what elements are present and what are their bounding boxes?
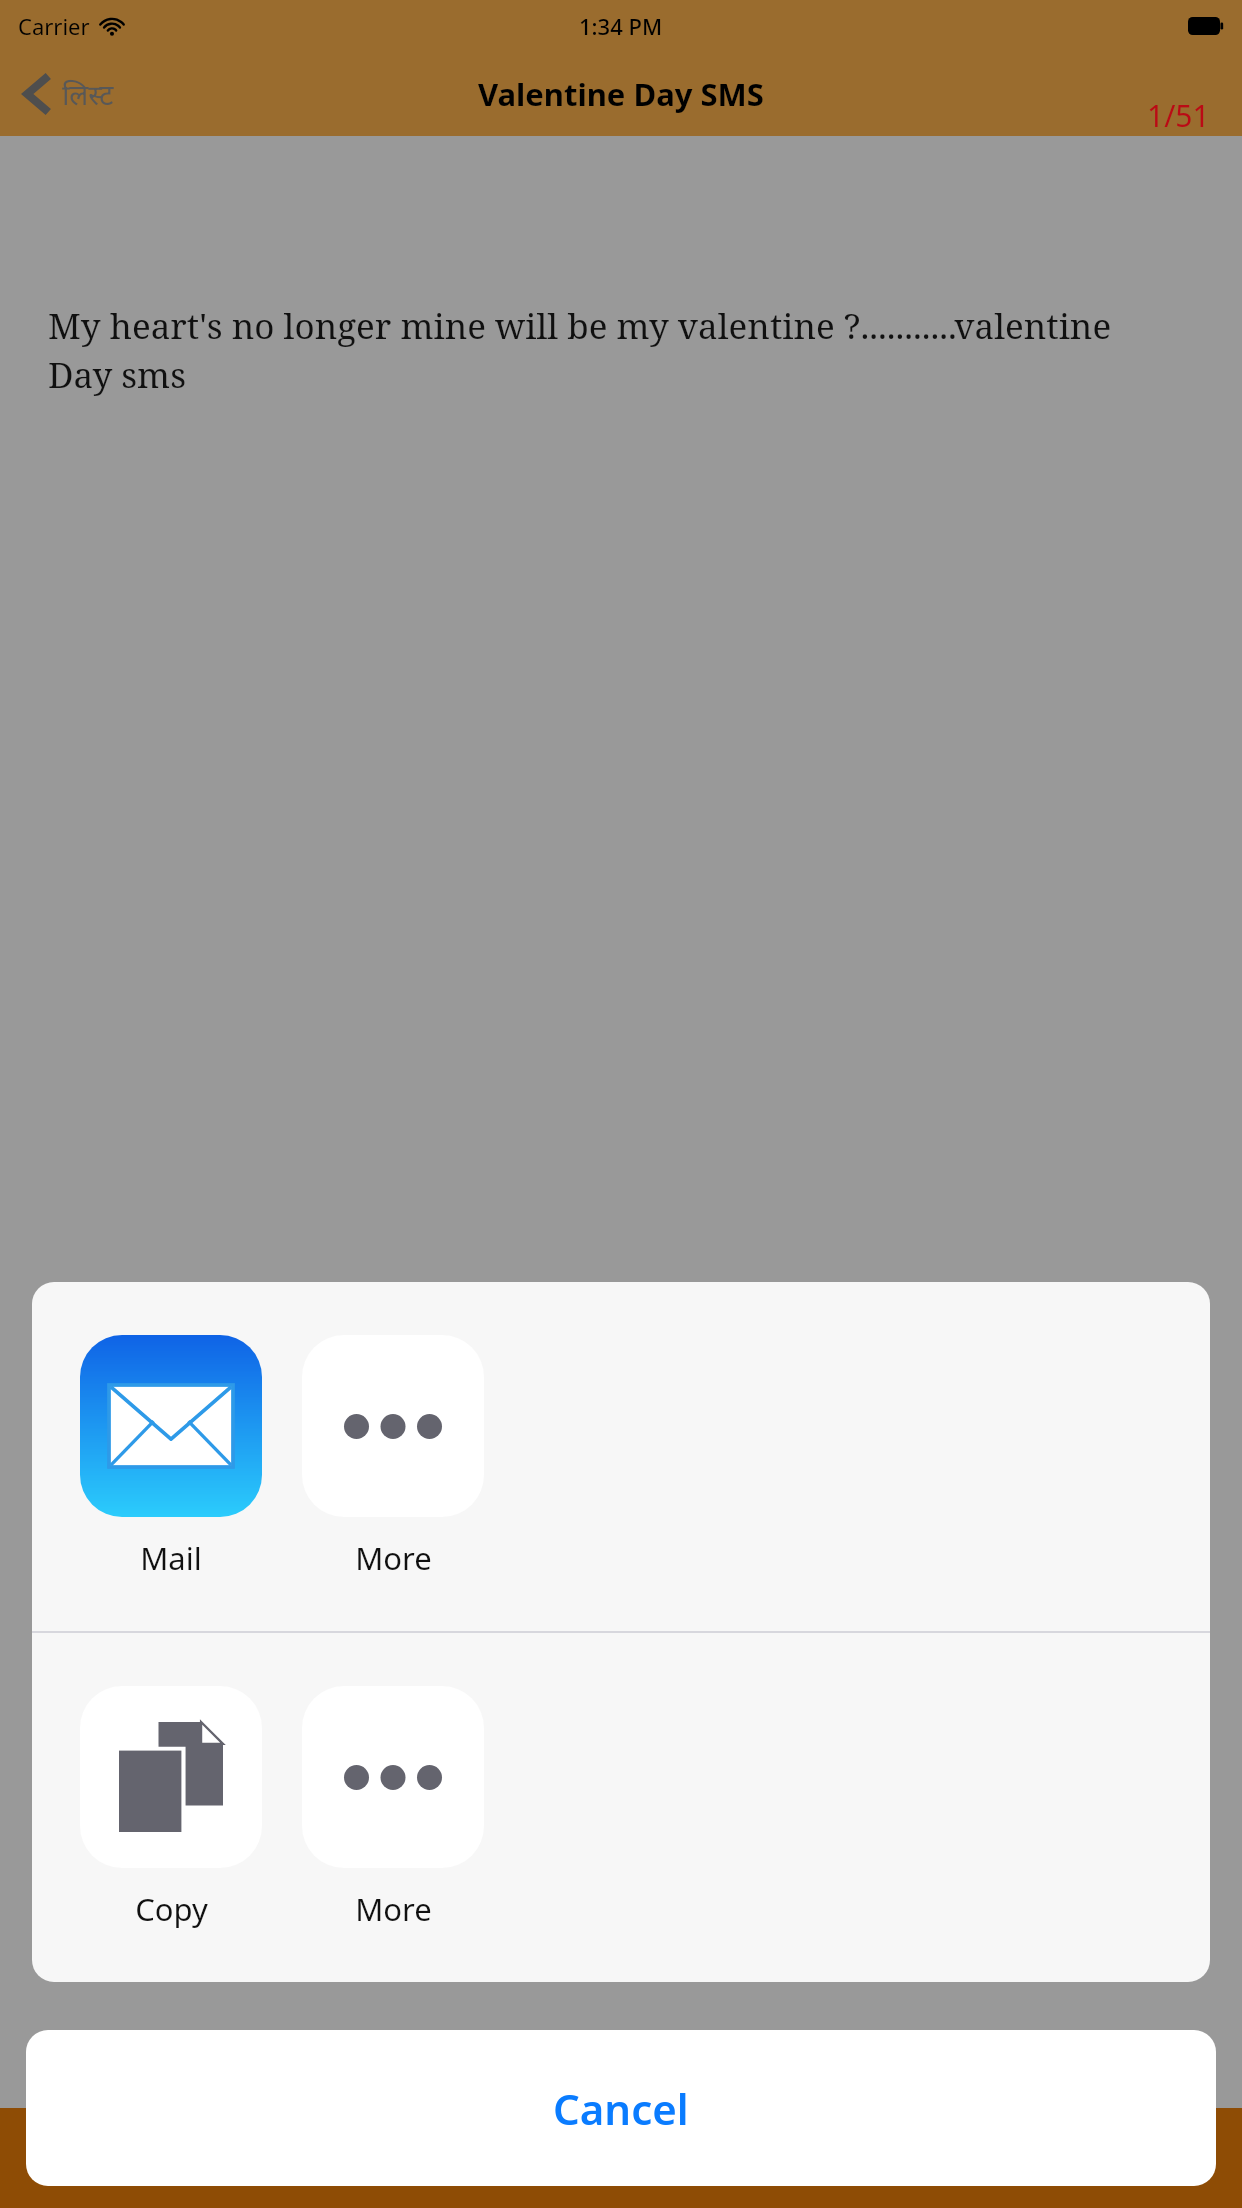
staticText: Mail [140,1537,202,1579]
button[interactable]: More [302,1331,484,1583]
button[interactable]: Share [566,2108,676,2208]
staticText: Valentine Day SMS [478,73,764,115]
staticText: Copy [135,1888,208,1930]
button[interactable]: More [302,1682,484,1934]
button[interactable]: Next [904,2108,1014,2208]
staticText: More [355,1537,432,1579]
staticText: 1/51 [1147,95,1210,136]
staticText: लिस्ट [62,75,114,113]
staticText: More [355,1888,432,1930]
staticText: Cancel [553,2080,689,2137]
button[interactable]: लिस्ट [0,64,132,124]
staticText: 1:34 PM [579,11,663,41]
button[interactable]: Cancel [26,2030,1216,2186]
button[interactable]: Copy [80,1682,262,1934]
staticText: My heart's no longer mine will be my val… [48,302,1178,398]
button[interactable]: Mail [80,1331,262,1583]
button[interactable]: Previous [228,2108,338,2208]
staticText: Carrier [18,11,90,41]
